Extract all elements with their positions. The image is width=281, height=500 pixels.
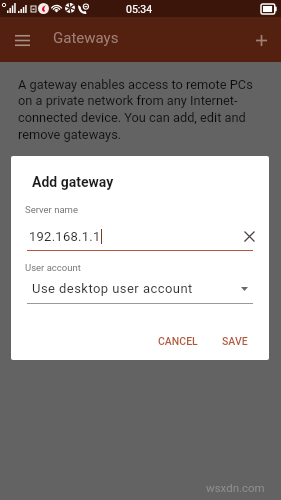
staticText: Use desktop user account xyxy=(32,281,193,296)
button[interactable]: SAVE xyxy=(213,329,257,353)
button[interactable]: Open navigation menu xyxy=(7,26,37,54)
staticText: A gateway enables access to remote PCs o… xyxy=(18,77,253,143)
button[interactable]: CANCEL xyxy=(149,329,213,353)
staticText: SAVE xyxy=(222,335,248,347)
staticText: Add gateway xyxy=(32,174,114,190)
staticText: 05:34 xyxy=(126,3,153,15)
button[interactable]: Clear server name xyxy=(239,226,259,246)
staticText: Server name xyxy=(25,204,78,215)
staticText: Gateways xyxy=(53,29,119,47)
staticText: wsxdn.com xyxy=(206,481,265,494)
button[interactable]: Add gateway xyxy=(246,26,276,54)
staticText: User account xyxy=(25,262,81,273)
staticText: CANCEL xyxy=(158,335,198,347)
staticText: 192.168.1.1 xyxy=(29,229,101,244)
